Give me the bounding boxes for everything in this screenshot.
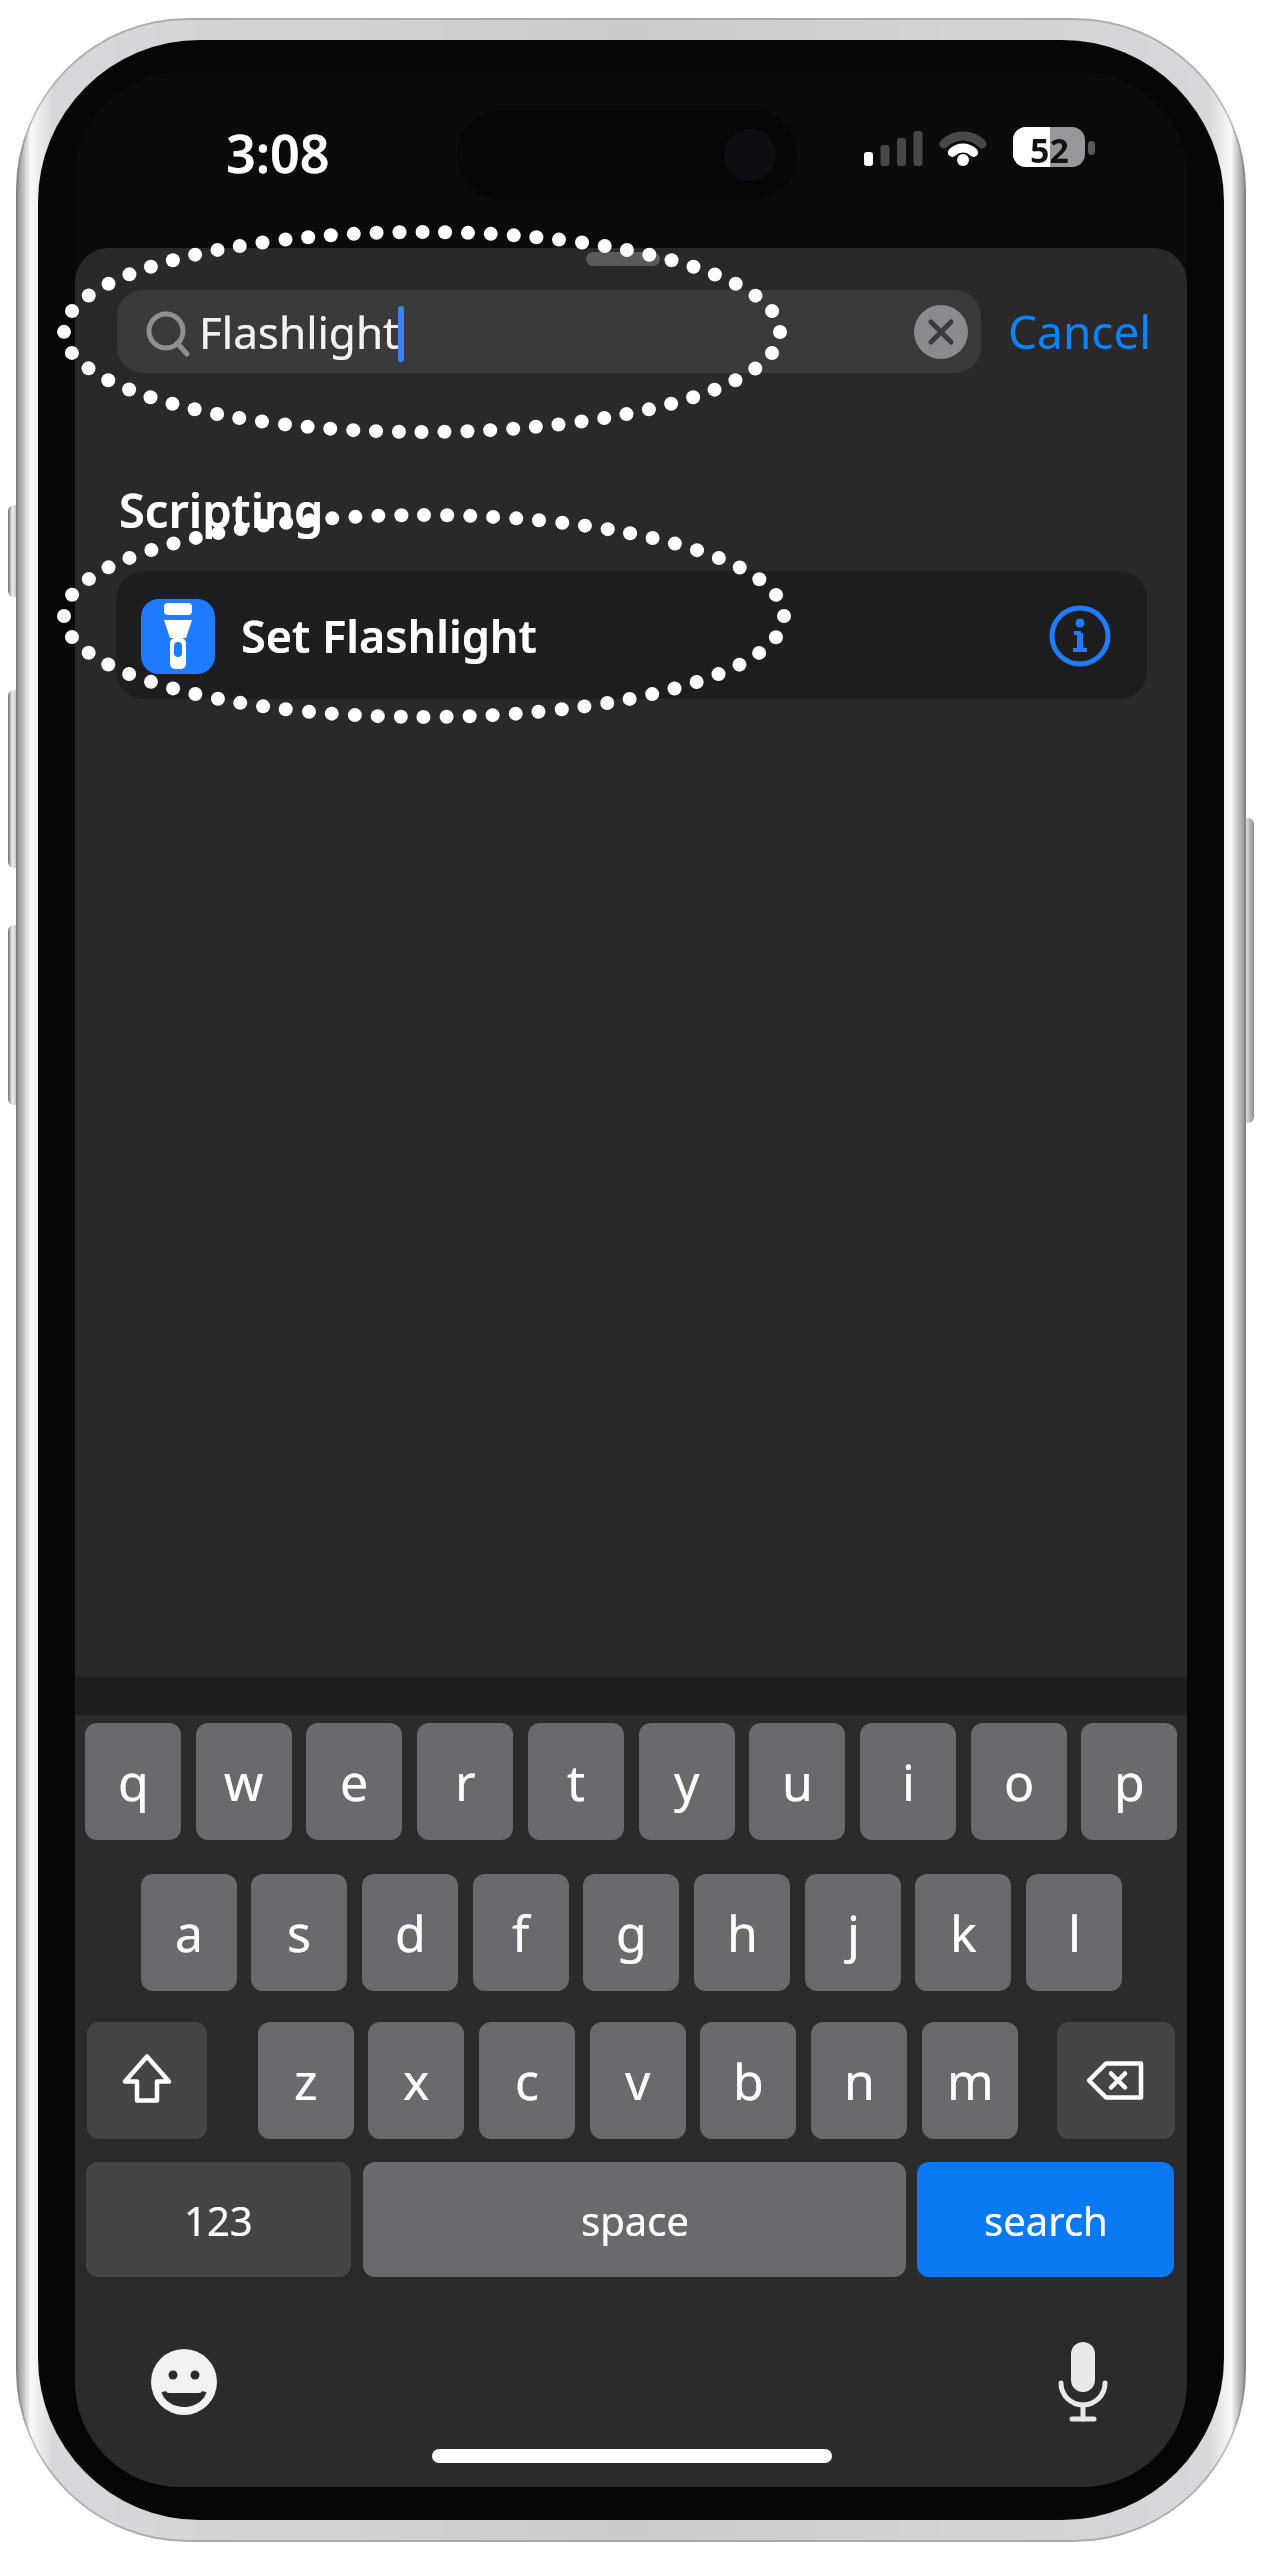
staticText: y — [674, 1748, 700, 1816]
staticText: search — [984, 2193, 1108, 2247]
staticText: 123 — [184, 2193, 253, 2247]
button[interactable]: g — [583, 1874, 679, 1991]
button[interactable]: h — [694, 1874, 790, 1991]
staticText: g — [616, 1899, 647, 1967]
button[interactable] — [1048, 604, 1112, 668]
staticText: t — [567, 1748, 586, 1816]
staticText: a — [175, 1899, 204, 1967]
button[interactable]: space — [363, 2162, 906, 2277]
button[interactable]: t — [528, 1723, 624, 1840]
staticText: k — [950, 1899, 977, 1967]
button[interactable]: n — [811, 2022, 907, 2139]
button[interactable]: search — [917, 2162, 1174, 2277]
button[interactable]: m — [922, 2022, 1018, 2139]
button[interactable]: q — [85, 1723, 181, 1840]
button[interactable]: e — [306, 1723, 402, 1840]
staticText: v — [625, 2047, 651, 2115]
staticText: w — [224, 1748, 264, 1816]
button[interactable]: w — [196, 1723, 292, 1840]
button[interactable]: z — [258, 2022, 354, 2139]
staticText: e — [340, 1748, 369, 1816]
staticText: b — [733, 2047, 764, 2115]
button[interactable]: v — [590, 2022, 686, 2139]
staticText: r — [455, 1748, 476, 1816]
staticText: x — [403, 2047, 430, 2115]
button[interactable] — [914, 305, 968, 359]
button[interactable]: c — [479, 2022, 575, 2139]
staticText: Flashlight — [199, 302, 399, 362]
staticText: n — [844, 2047, 875, 2115]
staticText: j — [847, 1899, 860, 1967]
button[interactable]: x — [368, 2022, 464, 2139]
staticText: o — [1004, 1748, 1035, 1816]
button[interactable] — [116, 571, 1147, 699]
button[interactable]: f — [473, 1874, 569, 1991]
staticText: Cancel — [1008, 300, 1152, 363]
staticText: 52 — [1030, 127, 1069, 167]
staticText: c — [515, 2047, 539, 2115]
staticText: q — [118, 1748, 149, 1816]
staticText: 3:08 — [226, 117, 330, 188]
staticText: u — [782, 1748, 813, 1816]
button[interactable] — [1057, 2022, 1175, 2139]
staticText: space — [581, 2193, 689, 2247]
staticText: h — [727, 1899, 758, 1967]
button[interactable] — [87, 2022, 207, 2139]
staticText: z — [294, 2047, 318, 2115]
button[interactable] — [1046, 2338, 1120, 2426]
staticText: s — [287, 1899, 311, 1967]
button[interactable]: u — [749, 1723, 845, 1840]
staticText: i — [902, 1748, 915, 1816]
button[interactable]: y — [639, 1723, 735, 1840]
button[interactable]: 123 — [86, 2162, 351, 2277]
button[interactable]: b — [700, 2022, 796, 2139]
button[interactable]: l — [1026, 1874, 1122, 1991]
staticText: d — [395, 1899, 426, 1967]
button[interactable]: j — [805, 1874, 901, 1991]
staticText: Scripting — [119, 478, 324, 540]
button[interactable]: a — [141, 1874, 237, 1991]
staticText: l — [1068, 1899, 1081, 1967]
button[interactable]: o — [971, 1723, 1067, 1840]
button[interactable]: p — [1081, 1723, 1177, 1840]
button[interactable] — [148, 2346, 220, 2418]
button[interactable]: i — [860, 1723, 956, 1840]
button[interactable] — [117, 290, 981, 373]
button[interactable]: k — [915, 1874, 1011, 1991]
staticText: Set Flashlight — [241, 605, 537, 666]
button[interactable]: Cancel — [1005, 290, 1155, 373]
button[interactable]: r — [417, 1723, 513, 1840]
staticText: f — [512, 1899, 530, 1967]
button[interactable]: d — [362, 1874, 458, 1991]
button[interactable]: s — [251, 1874, 347, 1991]
staticText: p — [1114, 1748, 1145, 1816]
staticText: m — [947, 2047, 994, 2115]
